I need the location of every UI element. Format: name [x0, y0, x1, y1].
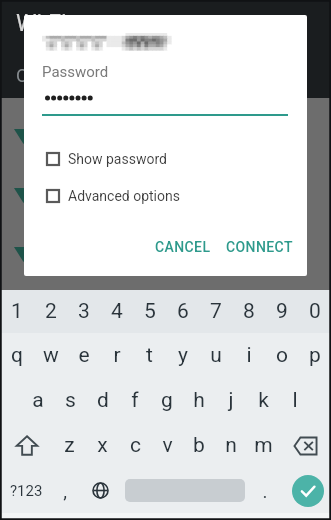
staticText: u	[210, 343, 222, 368]
button[interactable]: q	[0, 333, 34, 378]
button[interactable]: r	[100, 333, 133, 378]
button[interactable]: o	[265, 333, 298, 378]
button[interactable]: Space	[124, 468, 246, 513]
button[interactable]: s	[54, 378, 87, 423]
staticText: f	[131, 388, 139, 413]
staticText: p	[309, 343, 321, 368]
staticText: 2	[45, 299, 57, 324]
staticText: Wi-Fi	[16, 10, 67, 37]
staticText: o	[276, 343, 288, 368]
staticText: e	[78, 343, 90, 368]
button[interactable]: Shift	[0, 423, 53, 468]
button[interactable]: CONNECT	[219, 233, 300, 261]
button[interactable]: Change language	[77, 468, 124, 513]
button[interactable]: CANCEL	[148, 233, 218, 261]
staticText: h	[193, 388, 205, 413]
button[interactable]: a	[21, 378, 54, 423]
button[interactable]: z	[53, 423, 86, 468]
staticText: i	[246, 343, 252, 368]
button[interactable]: u	[199, 333, 232, 378]
button[interactable]: ?123	[0, 468, 53, 513]
staticText: z	[64, 433, 75, 458]
button[interactable]: m	[247, 423, 279, 468]
staticText: ?123	[10, 482, 43, 500]
staticText: 5	[144, 299, 156, 324]
button[interactable]: p	[298, 333, 331, 378]
staticText: On	[16, 65, 39, 86]
staticText: n	[225, 433, 237, 458]
button[interactable]: d	[87, 378, 119, 423]
staticText: x	[97, 433, 108, 458]
button[interactable]: l	[279, 378, 311, 423]
staticText: b	[193, 433, 205, 458]
button[interactable]: w	[34, 333, 67, 378]
button[interactable]: g	[151, 378, 183, 423]
button[interactable]: b	[183, 423, 215, 468]
staticText: 8	[243, 299, 255, 324]
button[interactable]: n	[215, 423, 247, 468]
button[interactable]: 6	[166, 290, 199, 333]
button[interactable]: Enter	[284, 468, 331, 513]
staticText: t	[146, 343, 153, 368]
button[interactable]: f	[119, 378, 151, 423]
staticText: r	[113, 343, 121, 368]
button[interactable]: c	[119, 423, 151, 468]
staticText: y	[178, 343, 188, 368]
button[interactable]: 8	[232, 290, 265, 333]
staticText: c	[130, 433, 141, 458]
button[interactable]: t	[133, 333, 166, 378]
button[interactable]: .	[246, 468, 284, 513]
staticText: j	[228, 388, 234, 413]
button[interactable]: 1	[0, 290, 34, 333]
button[interactable]: x	[86, 423, 119, 468]
staticText: Show password	[68, 151, 167, 167]
staticText: ,	[63, 480, 67, 502]
button[interactable]: 4	[100, 290, 133, 333]
button[interactable]: 0	[298, 290, 331, 333]
staticText: g	[161, 388, 173, 413]
staticText: 4	[111, 299, 123, 324]
staticText: s	[65, 388, 76, 413]
button[interactable]: ,	[53, 468, 77, 513]
staticText: 6	[177, 299, 189, 324]
staticText: k	[258, 388, 269, 413]
button[interactable]: 5	[133, 290, 166, 333]
button[interactable]: 7	[199, 290, 232, 333]
button[interactable]: 2	[34, 290, 67, 333]
button[interactable]: Backspace	[279, 423, 331, 468]
button[interactable]: v	[151, 423, 183, 468]
staticText: m	[254, 433, 273, 458]
staticText: v	[162, 433, 173, 458]
staticText: 7	[210, 299, 222, 324]
staticText: a	[32, 388, 44, 413]
button[interactable]: 9	[265, 290, 298, 333]
button[interactable]: k	[247, 378, 279, 423]
staticText: 3	[78, 299, 90, 324]
staticText: Password	[42, 63, 109, 81]
button[interactable]: Show password	[24, 142, 307, 176]
staticText: Advanced options	[68, 188, 180, 204]
staticText: 1	[11, 299, 23, 324]
button[interactable]: h	[183, 378, 215, 423]
button[interactable]: j	[215, 378, 247, 423]
staticText: CONNECT	[226, 239, 293, 255]
button[interactable]: 3	[67, 290, 100, 333]
staticText: w	[43, 343, 59, 368]
staticText: q	[11, 343, 23, 368]
staticText: 0	[309, 299, 321, 324]
staticText: 9	[276, 299, 288, 324]
button[interactable]: Advanced options	[24, 179, 307, 213]
staticText: d	[97, 388, 109, 413]
button[interactable]: i	[232, 333, 265, 378]
staticText: l	[292, 388, 298, 413]
staticText: .	[262, 480, 268, 502]
staticText: CANCEL	[155, 239, 211, 255]
button[interactable]: e	[67, 333, 100, 378]
button[interactable]: y	[166, 333, 199, 378]
